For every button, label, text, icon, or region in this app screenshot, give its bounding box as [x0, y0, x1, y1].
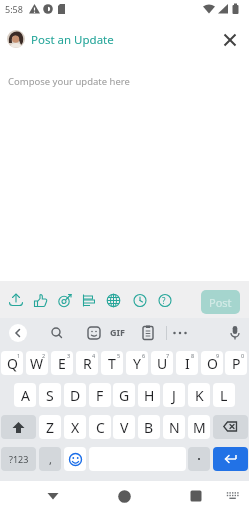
staticText: GIF [110, 326, 125, 338]
staticText: L [220, 386, 228, 405]
staticText: M [193, 418, 206, 437]
button[interactable]: I [176, 351, 198, 375]
button[interactable]: Post an Update [31, 32, 114, 48]
staticText: S [46, 386, 54, 405]
staticText: Post [209, 295, 232, 310]
staticText: 1 [17, 352, 21, 359]
button[interactable]: J [163, 383, 185, 407]
staticText: V [120, 418, 129, 437]
staticText: O [207, 354, 218, 373]
button[interactable]: S [39, 383, 61, 407]
button[interactable]: N [163, 415, 185, 439]
staticText: 4 [92, 352, 96, 359]
button[interactable] [9, 324, 27, 342]
button[interactable] [183, 483, 209, 509]
staticText: Z [46, 418, 55, 437]
button[interactable] [1, 415, 36, 439]
button[interactable]: C [89, 415, 111, 439]
staticText: T [108, 354, 116, 373]
button[interactable]: Q [1, 351, 23, 375]
button[interactable] [218, 28, 242, 52]
staticText: Y [133, 354, 141, 373]
staticText: P [232, 354, 241, 373]
button[interactable]: B [138, 415, 160, 439]
button[interactable] [64, 447, 86, 471]
staticText: F [96, 386, 104, 405]
staticText: C [96, 418, 105, 437]
staticText: ? [162, 295, 166, 306]
button[interactable] [213, 415, 248, 439]
button[interactable]: G [113, 383, 135, 407]
staticText: H [144, 386, 155, 405]
staticText: E [58, 354, 66, 373]
button[interactable]: K [188, 383, 210, 407]
button[interactable] [222, 485, 244, 507]
staticText: I [185, 354, 190, 373]
staticText: J [172, 386, 176, 405]
staticText: G [119, 386, 130, 405]
staticText: D [70, 386, 81, 405]
staticText: 5:58 [5, 3, 23, 15]
button[interactable] [213, 447, 248, 471]
button[interactable] [40, 483, 66, 509]
staticText: Post an Update [31, 32, 114, 48]
staticText: K [195, 386, 204, 405]
staticText: U [157, 354, 168, 373]
button[interactable]: P [225, 351, 247, 375]
staticText: A [21, 386, 30, 405]
button[interactable]: A [14, 383, 36, 407]
button[interactable]: R [76, 351, 98, 375]
staticText: R [83, 354, 92, 373]
button[interactable]: D [64, 383, 86, 407]
staticText: , [49, 452, 52, 467]
staticText: 2 [42, 352, 46, 359]
staticText: 8 [191, 352, 195, 359]
button[interactable]: F [89, 383, 111, 407]
staticText: 6 [142, 352, 146, 359]
button[interactable]: H [138, 383, 160, 407]
button[interactable]: Y [126, 351, 148, 375]
button[interactable]: T [101, 351, 123, 375]
button[interactable]: W [26, 351, 48, 375]
button[interactable]: Post [201, 290, 240, 314]
staticText: 3 [67, 352, 71, 359]
staticText: 0 [241, 352, 245, 359]
staticText: B [144, 418, 154, 437]
button[interactable]: Z [39, 415, 61, 439]
staticText: X [71, 418, 80, 437]
button[interactable]: L [213, 383, 235, 407]
button[interactable]: GIF [110, 326, 125, 338]
button[interactable] [111, 483, 137, 509]
button[interactable] [7, 30, 25, 48]
staticText: Compose your update here [8, 75, 130, 88]
staticText: ?123 [9, 453, 29, 465]
button[interactable]: O [201, 351, 223, 375]
button[interactable]: E [51, 351, 73, 375]
button[interactable]: X [64, 415, 86, 439]
staticText: 7 [166, 352, 170, 359]
button[interactable]: V [113, 415, 135, 439]
button[interactable]: , [39, 447, 61, 471]
staticText: W [30, 354, 44, 373]
button[interactable]: M [188, 415, 210, 439]
staticText: 9 [216, 352, 220, 359]
button[interactable]: ?123 [1, 447, 36, 471]
staticText: N [169, 418, 180, 437]
staticText: Q [7, 354, 18, 373]
button[interactable] [188, 447, 210, 471]
staticText: 5 [117, 352, 121, 359]
button[interactable]: U [151, 351, 173, 375]
